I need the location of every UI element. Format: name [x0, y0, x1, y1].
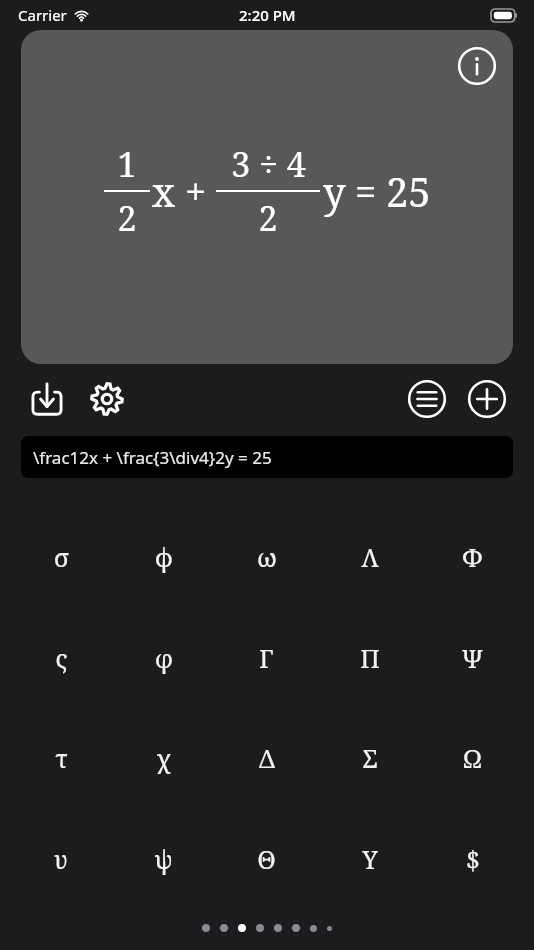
- staticText: τ: [55, 741, 68, 775]
- button[interactable]: Info: [21, 30, 513, 364]
- staticText: Λ: [361, 540, 379, 574]
- staticText: 2:20 PM: [239, 5, 296, 25]
- staticText: +: [185, 165, 207, 217]
- staticText: 25: [386, 164, 431, 218]
- staticText: χ: [156, 741, 171, 775]
- staticText: Ψ: [462, 641, 483, 675]
- staticText: Φ: [462, 540, 483, 574]
- staticText: ω: [257, 540, 277, 574]
- staticText: y: [323, 164, 346, 218]
- button[interactable]: τ: [10, 722, 112, 794]
- button[interactable]: Menu: [404, 376, 450, 422]
- button[interactable]: σ: [10, 521, 112, 593]
- button[interactable]: φ: [112, 622, 215, 694]
- staticText: Γ: [259, 641, 274, 675]
- staticText: Υ: [362, 842, 378, 876]
- staticText: Π: [360, 641, 380, 675]
- staticText: 3 ÷ 4: [231, 141, 306, 187]
- button[interactable]: Ω: [421, 722, 524, 794]
- button[interactable]: χ: [112, 722, 215, 794]
- staticText: Ω: [463, 741, 482, 775]
- button[interactable]: Δ: [215, 722, 318, 794]
- staticText: ς: [55, 641, 68, 675]
- staticText: 2: [117, 195, 137, 241]
- button[interactable]: ω: [215, 521, 318, 593]
- staticText: Θ: [257, 842, 276, 876]
- button[interactable]: Π: [318, 622, 421, 694]
- staticText: σ: [54, 540, 69, 574]
- button[interactable]: Settings: [84, 376, 130, 422]
- staticText: ψ: [154, 842, 173, 876]
- button[interactable]: υ: [10, 823, 112, 895]
- button[interactable]: Γ: [215, 622, 318, 694]
- button[interactable]: ψ: [112, 823, 215, 895]
- staticText: 1: [117, 141, 137, 187]
- button[interactable]: Θ: [215, 823, 318, 895]
- button[interactable]: Save: [24, 376, 70, 422]
- button[interactable]: Ψ: [421, 622, 524, 694]
- button[interactable]: Φ: [421, 521, 524, 593]
- staticText: $: [466, 842, 480, 876]
- button[interactable]: Info: [455, 44, 499, 88]
- staticText: =: [355, 165, 377, 217]
- staticText: υ: [54, 842, 68, 876]
- button[interactable]: $: [421, 823, 524, 895]
- button[interactable]: Υ: [318, 823, 421, 895]
- staticText: φ: [155, 641, 173, 675]
- button[interactable]: Σ: [318, 722, 421, 794]
- button[interactable]: ς: [10, 622, 112, 694]
- staticText: Carrier: [18, 5, 67, 25]
- staticText: Δ: [259, 741, 275, 775]
- staticText: Σ: [362, 741, 378, 775]
- staticText: \frac12x + \frac{3\div4}2y = 25: [33, 446, 272, 469]
- button[interactable]: ϕ: [112, 521, 215, 593]
- button[interactable]: Λ: [318, 521, 421, 593]
- staticText: x: [152, 164, 176, 218]
- staticText: 2: [258, 195, 278, 241]
- button[interactable]: \frac12x + \frac{3\div4}2y = 25: [21, 436, 513, 478]
- staticText: ϕ: [155, 540, 173, 574]
- button[interactable]: Add: [464, 376, 510, 422]
